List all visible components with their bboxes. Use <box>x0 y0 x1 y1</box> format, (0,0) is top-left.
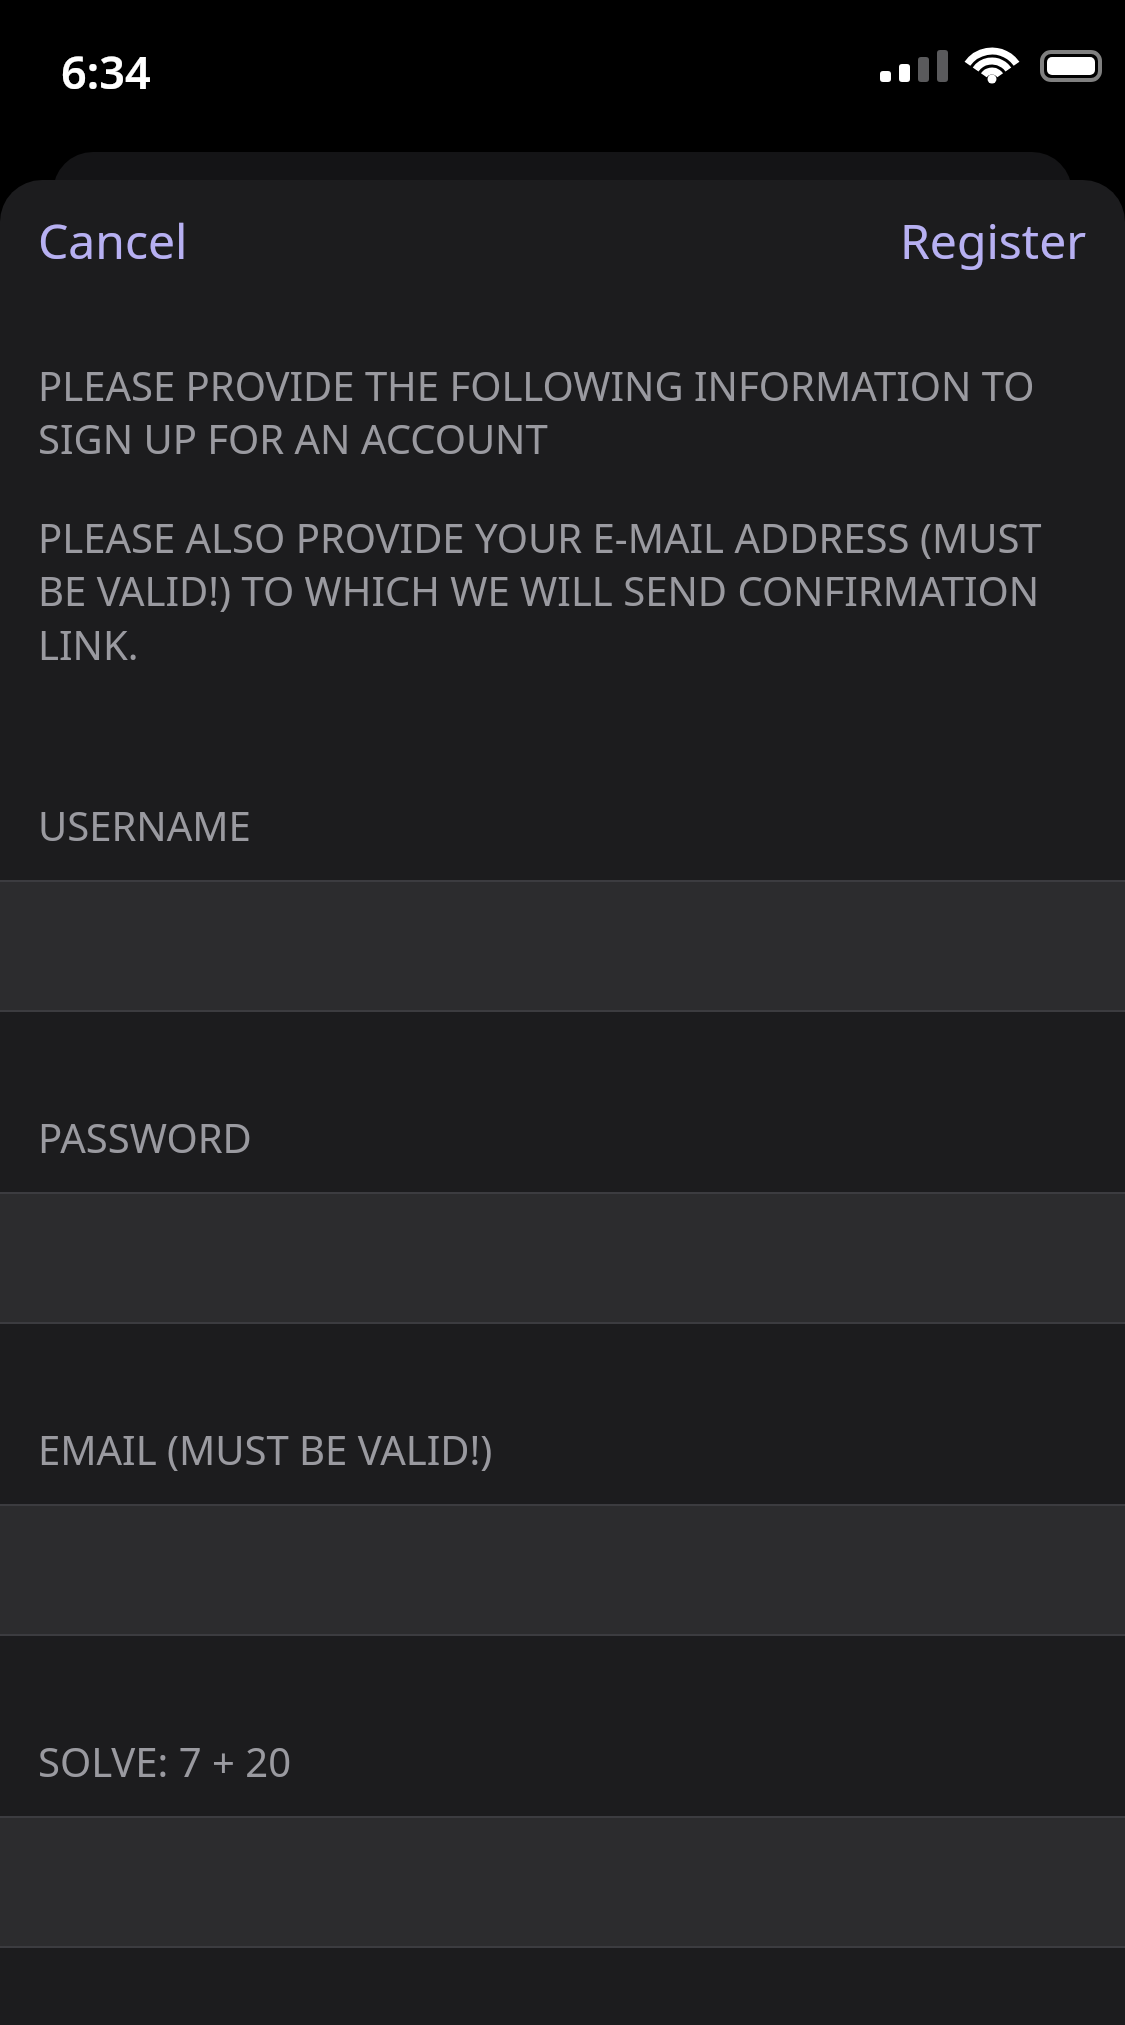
button[interactable]: Cancel <box>30 200 196 281</box>
staticText: EMAIL (MUST BE VALID!) <box>38 1422 493 1476</box>
staticText: USERNAME <box>38 798 251 852</box>
staticText: PLEASE PROVIDE THE FOLLOWING INFORMATION… <box>38 358 1087 466</box>
button[interactable]: Register <box>892 200 1095 281</box>
staticText: SOLVE: 7 + 20 <box>38 1734 292 1788</box>
staticText: 6:34 <box>61 41 151 102</box>
staticText: PASSWORD <box>38 1110 252 1164</box>
staticText: Cancel <box>38 208 188 273</box>
staticText: Register <box>900 208 1087 273</box>
staticText: PLEASE ALSO PROVIDE YOUR E-MAIL ADDRESS … <box>38 510 1087 672</box>
